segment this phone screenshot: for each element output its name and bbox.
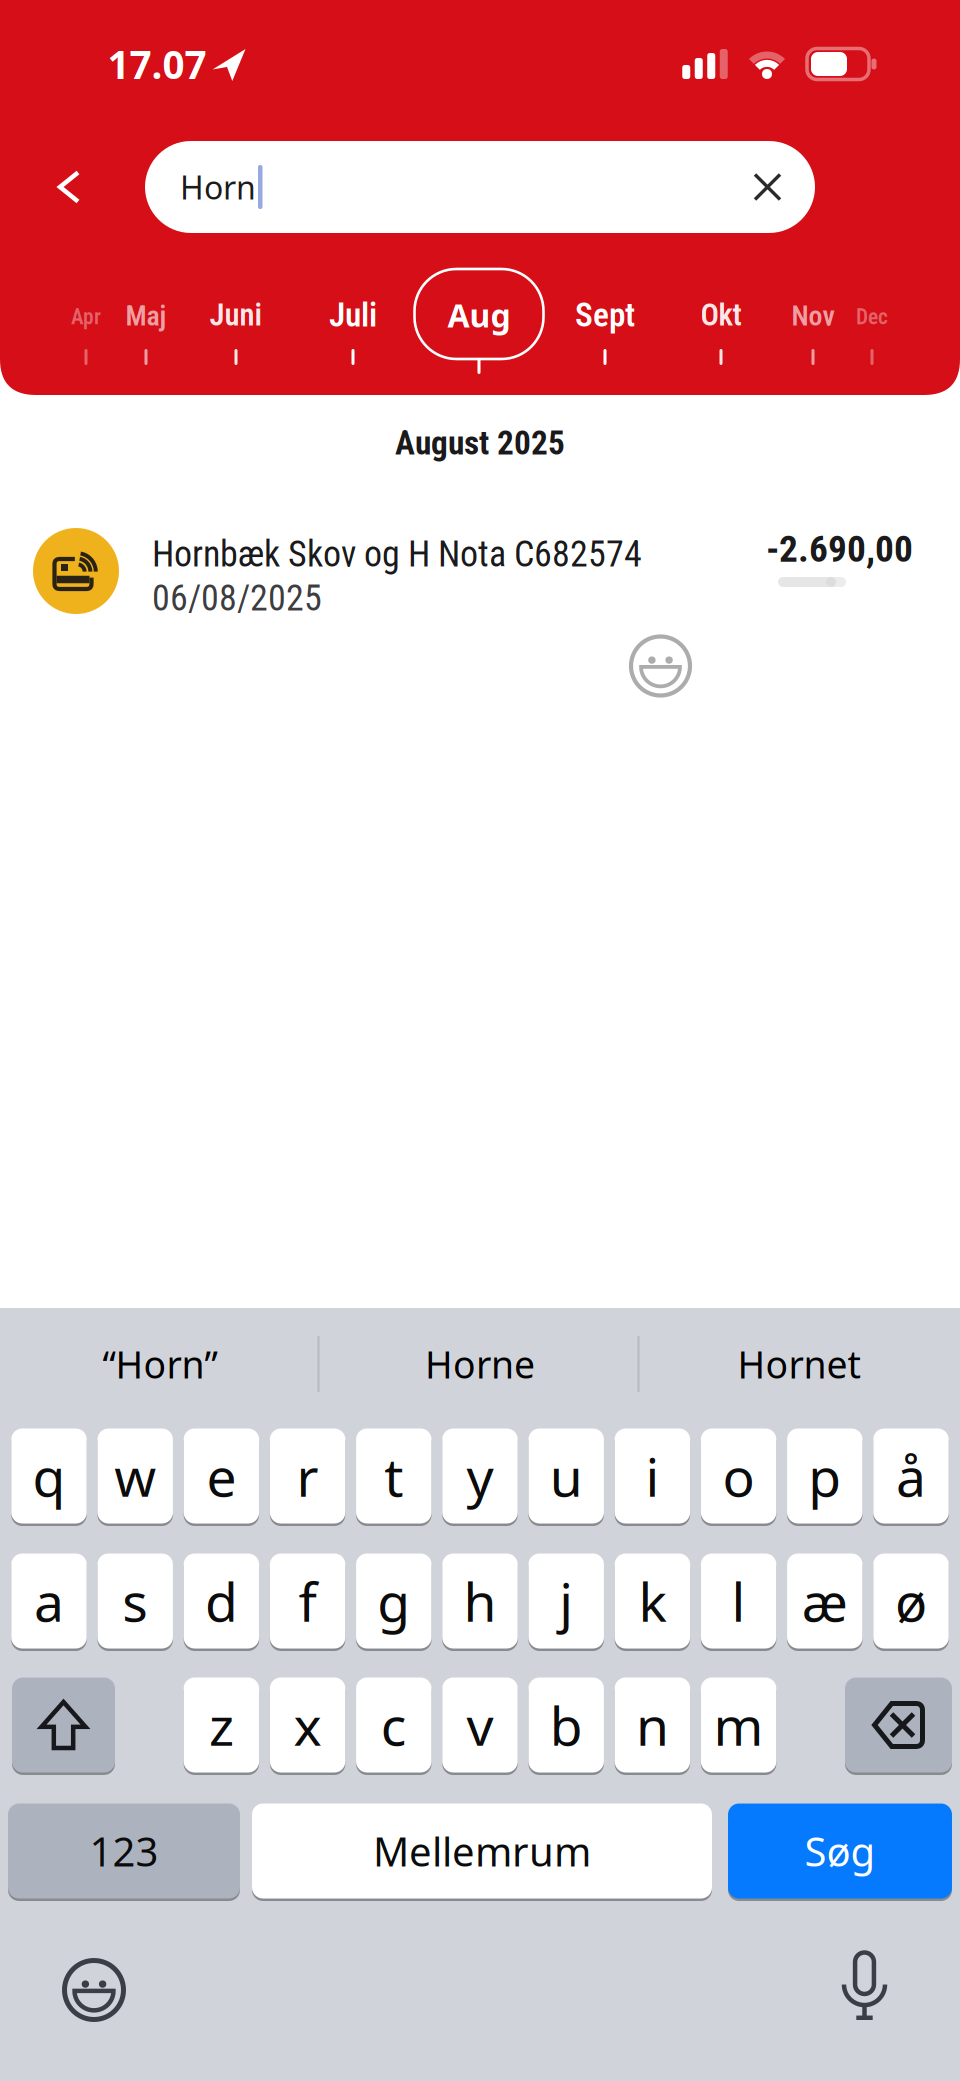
staticText: e xyxy=(206,1441,236,1511)
button[interactable]: ø xyxy=(873,1552,949,1650)
staticText: u xyxy=(550,1441,583,1511)
button[interactable]: t xyxy=(356,1427,432,1525)
staticText: å xyxy=(896,1441,926,1511)
button[interactable]: o xyxy=(701,1427,776,1525)
staticText: y xyxy=(466,1441,493,1511)
button[interactable] xyxy=(46,158,92,215)
button[interactable]: h xyxy=(442,1552,518,1650)
staticText: Juni xyxy=(209,297,262,333)
staticText: Maj xyxy=(125,300,166,332)
staticText: q xyxy=(32,1441,65,1511)
button[interactable]: w xyxy=(97,1427,173,1525)
staticText: æ xyxy=(802,1566,848,1636)
staticText: x xyxy=(294,1690,322,1760)
button[interactable] xyxy=(64,1960,123,2019)
staticText: z xyxy=(209,1690,234,1760)
button[interactable]: s xyxy=(97,1552,173,1650)
staticText: Horne xyxy=(425,1339,535,1389)
button[interactable]: Horne xyxy=(335,1331,625,1397)
staticText: m xyxy=(714,1690,764,1760)
staticText: f xyxy=(299,1566,317,1636)
button[interactable]: i xyxy=(615,1427,690,1525)
staticText: h xyxy=(463,1566,496,1636)
staticText: Juli xyxy=(329,295,377,335)
staticText: Sept xyxy=(575,295,635,335)
staticText: “Horn” xyxy=(102,1339,217,1389)
staticText: v xyxy=(466,1690,493,1760)
staticText: Apr xyxy=(71,304,101,329)
staticText: g xyxy=(377,1566,410,1636)
staticText: o xyxy=(723,1441,755,1511)
button[interactable]: q xyxy=(11,1427,87,1525)
staticText: Mellemrum xyxy=(373,1824,591,1877)
staticText: Søg xyxy=(804,1824,875,1877)
button[interactable]: Hornet xyxy=(654,1331,944,1397)
staticText: ø xyxy=(895,1566,927,1636)
staticText: a xyxy=(34,1566,64,1636)
staticText: Hornbæk Skov og H Nota C682574 xyxy=(152,533,642,575)
button[interactable]: l xyxy=(701,1552,776,1650)
button[interactable]: Mellemrum xyxy=(252,1802,712,1900)
staticText: Aug xyxy=(447,294,510,336)
button[interactable]: y xyxy=(442,1427,518,1525)
button[interactable]: æ xyxy=(787,1552,863,1650)
button[interactable]: x xyxy=(270,1676,345,1774)
button[interactable]: f xyxy=(270,1552,345,1650)
button[interactable]: Aug xyxy=(447,294,510,336)
button[interactable]: d xyxy=(184,1552,259,1650)
staticText: n xyxy=(636,1690,669,1760)
staticText: p xyxy=(808,1441,841,1511)
button[interactable]: c xyxy=(356,1676,431,1774)
button[interactable]: Sept xyxy=(575,295,635,335)
button[interactable]: Juni xyxy=(209,297,262,333)
staticText: Okt xyxy=(700,297,741,333)
button[interactable]: å xyxy=(873,1427,949,1525)
button[interactable]: n xyxy=(615,1676,690,1774)
staticText: c xyxy=(381,1690,407,1760)
staticText: d xyxy=(205,1566,238,1636)
button[interactable]: Okt xyxy=(700,297,741,333)
staticText: i xyxy=(645,1441,659,1511)
button[interactable]: m xyxy=(701,1676,776,1774)
button[interactable]: Søg xyxy=(728,1802,952,1900)
button[interactable] xyxy=(12,1676,115,1774)
staticText: s xyxy=(122,1566,148,1636)
button[interactable]: “Horn” xyxy=(15,1331,305,1397)
button[interactable]: e xyxy=(184,1427,259,1525)
staticText: t xyxy=(384,1441,403,1511)
button[interactable]: Dec xyxy=(856,304,888,329)
staticText: Hornet xyxy=(737,1339,860,1389)
button[interactable] xyxy=(844,1952,885,2020)
button[interactable]: Hornbæk Skov og H Nota C682574 xyxy=(0,506,960,636)
button[interactable]: Juli xyxy=(329,295,377,335)
button[interactable]: Maj xyxy=(125,300,166,332)
button[interactable] xyxy=(845,1676,952,1774)
staticText: 123 xyxy=(89,1824,158,1877)
button[interactable]: g xyxy=(356,1552,432,1650)
staticText: Dec xyxy=(856,304,888,329)
button[interactable]: z xyxy=(184,1676,259,1774)
staticText: -2.690,00 xyxy=(766,527,913,571)
button[interactable]: k xyxy=(615,1552,690,1650)
staticText: August 2025 xyxy=(395,423,565,463)
button[interactable]: Horn xyxy=(145,141,815,233)
button[interactable]: r xyxy=(270,1427,345,1525)
staticText: r xyxy=(297,1441,319,1511)
button[interactable]: a xyxy=(11,1552,87,1650)
staticText: j xyxy=(559,1566,573,1636)
staticText: k xyxy=(638,1566,666,1636)
button[interactable]: Nov xyxy=(791,300,834,332)
button[interactable]: p xyxy=(787,1427,863,1525)
button[interactable]: b xyxy=(528,1676,604,1774)
button[interactable]: Apr xyxy=(71,304,101,329)
button[interactable]: u xyxy=(528,1427,604,1525)
button[interactable]: 123 xyxy=(8,1802,240,1900)
staticText: 17.07 xyxy=(107,38,206,90)
staticText: l xyxy=(732,1566,746,1636)
button[interactable]: v xyxy=(442,1676,518,1774)
staticText: 06/08/2025 xyxy=(152,577,322,619)
staticText: b xyxy=(550,1690,583,1760)
button[interactable]: j xyxy=(528,1552,604,1650)
staticText: w xyxy=(114,1441,156,1511)
staticText: Nov xyxy=(791,300,834,332)
